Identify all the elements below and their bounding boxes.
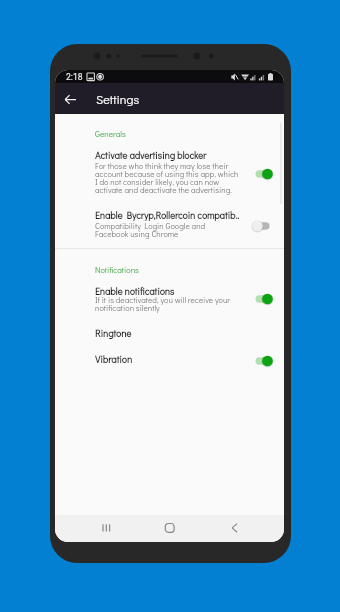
- button[interactable]: Recent apps: [92, 515, 119, 542]
- staticText: Settings: [96, 91, 140, 107]
- button[interactable]: Enable notifications: [95, 285, 175, 297]
- button[interactable]: Vibration: [95, 353, 133, 365]
- button[interactable]: Toggle off: [250, 219, 275, 233]
- button[interactable]: Ringtone: [95, 327, 132, 339]
- button[interactable]: Activate advertising blocker: [95, 149, 207, 161]
- staticText: 2:18: [66, 72, 83, 82]
- staticText: Compatibility Login Google and Facebook …: [95, 220, 206, 239]
- staticText: If it is deactivated, you will receive y…: [95, 294, 231, 313]
- button[interactable]: Toggle on: [250, 167, 275, 181]
- staticText: Generals: [95, 128, 126, 139]
- staticText: Notifications: [95, 264, 139, 275]
- button[interactable]: Back: [221, 515, 248, 542]
- staticText: For those who think they may lose their …: [95, 160, 239, 195]
- button[interactable]: Toggle on: [250, 292, 275, 306]
- button[interactable]: Back: [58, 87, 82, 111]
- button[interactable]: Enable Bycryp,Rollercoin compatib..: [95, 209, 240, 221]
- button[interactable]: Toggle on: [250, 354, 275, 368]
- button[interactable]: Home: [156, 515, 183, 542]
